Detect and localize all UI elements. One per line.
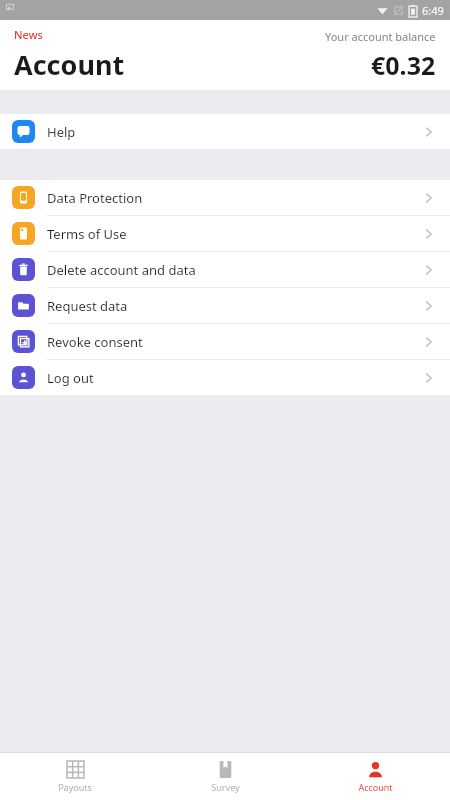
button[interactable]: Account bbox=[300, 753, 450, 800]
staticText: Data Protection bbox=[47, 189, 143, 207]
staticText: Log out bbox=[47, 369, 94, 387]
staticText: Terms of Use bbox=[47, 225, 127, 243]
button[interactable]: Payouts bbox=[0, 753, 150, 800]
staticText: €0.32 bbox=[371, 48, 436, 82]
button[interactable]: Revoke consent bbox=[0, 324, 450, 359]
staticText: Your account balance bbox=[325, 29, 436, 44]
staticText: Payouts bbox=[58, 781, 92, 793]
button[interactable]: Request data bbox=[0, 288, 450, 323]
staticText: Delete account and data bbox=[47, 261, 196, 279]
staticText: Request data bbox=[47, 297, 128, 315]
staticText: Account bbox=[14, 46, 125, 83]
button[interactable]: Survey bbox=[150, 753, 300, 800]
button[interactable]: Data Protection bbox=[0, 180, 450, 215]
staticText: News bbox=[14, 27, 43, 42]
button[interactable]: Help bbox=[0, 114, 450, 149]
staticText: Survey bbox=[211, 781, 240, 793]
button[interactable]: Terms of Use bbox=[0, 216, 450, 251]
button[interactable]: Delete account and data bbox=[0, 252, 450, 287]
button[interactable]: Log out bbox=[0, 360, 450, 395]
staticText: 6:49 bbox=[422, 3, 444, 18]
staticText: Help bbox=[47, 123, 76, 141]
staticText: Revoke consent bbox=[47, 333, 143, 351]
staticText: Account bbox=[358, 781, 393, 793]
